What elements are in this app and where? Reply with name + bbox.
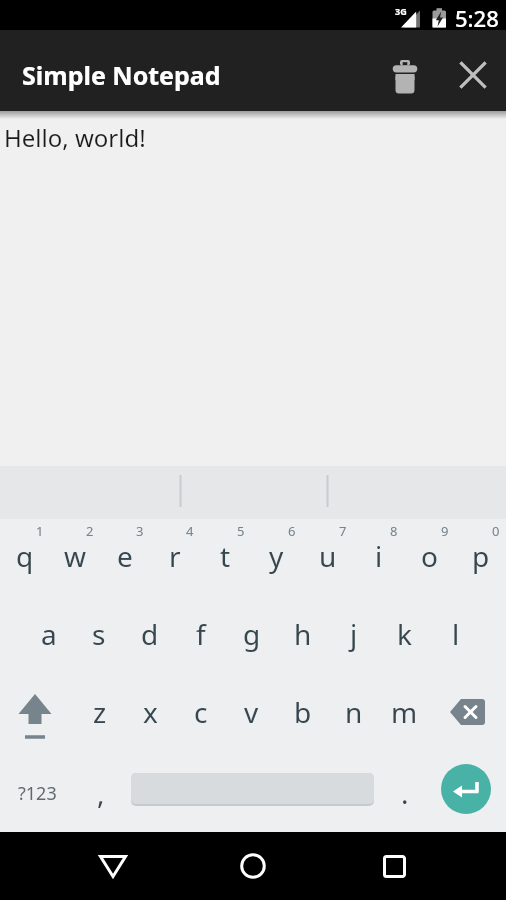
button[interactable]: l [430, 598, 481, 676]
staticText: z [93, 693, 107, 731]
staticText: q [16, 537, 34, 575]
button[interactable]: x [125, 676, 175, 754]
staticText: d [141, 615, 159, 653]
staticText: a [41, 615, 57, 653]
button[interactable] [430, 754, 506, 832]
staticText: l [452, 615, 460, 653]
staticText: g [243, 615, 261, 653]
staticText: f [196, 615, 206, 653]
button[interactable] [68, 832, 158, 900]
staticText: s [92, 615, 106, 653]
button[interactable] [349, 832, 439, 900]
button[interactable]: h [277, 598, 328, 676]
staticText: n [345, 693, 363, 731]
button[interactable]: e [100, 519, 150, 598]
button[interactable]: t [200, 519, 251, 598]
staticText: j [350, 615, 358, 653]
staticText: r [169, 537, 181, 575]
button[interactable]: g [226, 598, 277, 676]
button[interactable]: j [328, 598, 379, 676]
button[interactable]: b [277, 676, 328, 754]
button[interactable]: r [150, 519, 200, 598]
staticText: v [244, 693, 259, 731]
button[interactable]: y [251, 519, 302, 598]
button[interactable]: . [379, 754, 430, 832]
staticText: 6 [288, 522, 296, 540]
staticText: 7 [339, 522, 347, 540]
staticText: 1 [36, 522, 44, 540]
button[interactable]: q [0, 519, 50, 598]
staticText: 2 [86, 522, 94, 540]
staticText: b [294, 693, 312, 731]
staticText: t [220, 537, 231, 575]
button[interactable]: v [226, 676, 277, 754]
button[interactable]: k [379, 598, 430, 676]
button[interactable] [449, 51, 497, 99]
button[interactable] [430, 676, 506, 754]
staticText: k [397, 615, 412, 653]
staticText: 0 [492, 522, 500, 540]
button[interactable] [0, 676, 75, 754]
button[interactable]: s [74, 598, 124, 676]
button[interactable]: d [124, 598, 175, 676]
staticText: ?123 [18, 781, 57, 806]
staticText: Simple Notepad [22, 58, 221, 92]
button[interactable]: z [75, 676, 125, 754]
staticText: x [143, 693, 158, 731]
button[interactable]: o [404, 519, 455, 598]
button[interactable] [126, 754, 379, 832]
button[interactable]: w [50, 519, 100, 598]
button[interactable]: c [175, 676, 226, 754]
staticText: c [194, 693, 208, 731]
staticText: w [64, 537, 87, 575]
staticText: 8 [390, 522, 398, 540]
button[interactable]: i [353, 519, 404, 598]
staticText: 5:28 [455, 3, 499, 33]
staticText: p [472, 537, 490, 575]
staticText: i [375, 537, 383, 575]
staticText: Hello, world! [4, 121, 146, 154]
staticText: 9 [441, 522, 449, 540]
staticText: 4 [186, 522, 194, 540]
button[interactable]: p [455, 519, 506, 598]
button[interactable] [381, 49, 429, 97]
staticText: o [421, 537, 438, 575]
button[interactable]: u [302, 519, 353, 598]
staticText: 3 [136, 522, 144, 540]
button[interactable]: , [75, 754, 126, 832]
button[interactable]: a [24, 598, 74, 676]
staticText: 3G [395, 5, 407, 17]
button[interactable]: m [379, 676, 430, 754]
staticText: y [269, 537, 284, 575]
button[interactable] [441, 764, 491, 814]
button[interactable]: ?123 [0, 754, 75, 832]
staticText: 5 [237, 522, 245, 540]
button[interactable]: f [175, 598, 226, 676]
staticText: m [391, 693, 418, 731]
staticText: u [319, 537, 337, 575]
staticText: h [294, 615, 312, 653]
staticText: , [97, 774, 105, 812]
staticText: e [117, 537, 133, 575]
button[interactable] [208, 832, 298, 900]
button[interactable]: n [328, 676, 379, 754]
staticText: . [401, 774, 409, 812]
